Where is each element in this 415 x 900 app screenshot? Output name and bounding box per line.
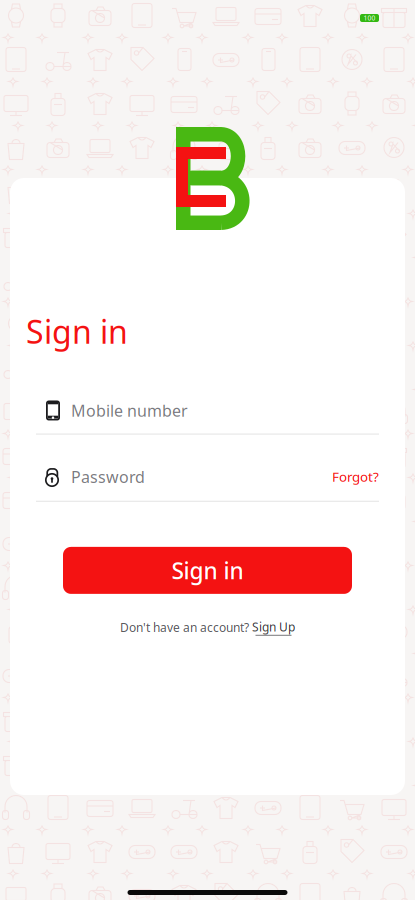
staticText: Forgot? (332, 468, 379, 485)
staticText: Sign in (26, 310, 128, 352)
button[interactable]: Sign in (63, 547, 352, 594)
staticText: Sign in (171, 555, 243, 585)
staticText: Sign Up (252, 619, 295, 635)
button[interactable]: Sign Up (252, 619, 295, 636)
staticText: Don't have an account? (120, 619, 252, 635)
button[interactable]: Forgot? (332, 468, 379, 485)
staticText: Mobile number (71, 400, 188, 421)
staticText: 100 (363, 14, 375, 22)
staticText: Password (71, 466, 145, 487)
